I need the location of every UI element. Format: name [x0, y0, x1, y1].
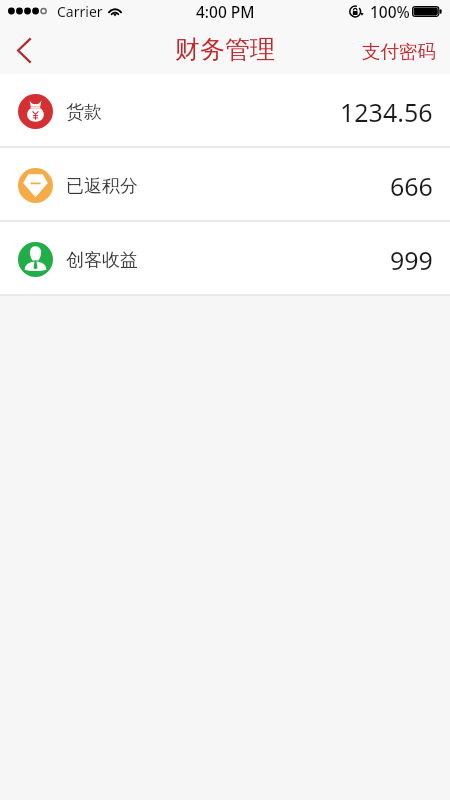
staticText: 货款 — [66, 101, 102, 124]
staticText: 1234.56 — [340, 95, 433, 129]
staticText: 创客收益 — [66, 249, 138, 272]
button[interactable]: 已返积分 — [0, 148, 450, 220]
staticText: 支付密码 — [362, 40, 436, 63]
staticText: Carrier — [57, 2, 103, 21]
staticText: 财务管理 — [175, 34, 275, 65]
button[interactable]: Back — [0, 22, 50, 74]
button[interactable]: 支付密码 — [0, 22, 450, 74]
staticText: 4:00 PM — [196, 1, 255, 22]
staticText: 100% — [370, 1, 410, 22]
button[interactable]: 货款 — [0, 74, 450, 146]
staticText: 666 — [390, 169, 433, 203]
staticText: 已返积分 — [66, 175, 138, 198]
staticText: 999 — [390, 243, 433, 277]
button[interactable]: 创客收益 — [0, 222, 450, 294]
